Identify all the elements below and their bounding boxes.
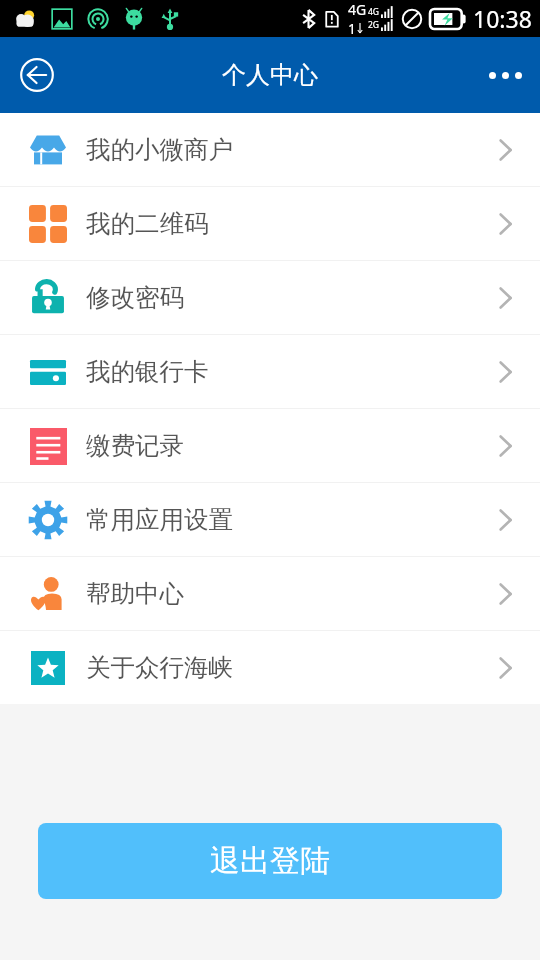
staticText: 修改密码 <box>86 282 184 313</box>
staticText: 4G <box>348 0 367 19</box>
staticText: 10:38 <box>473 3 532 34</box>
button[interactable]: 关于众行海峡 <box>0 631 540 704</box>
button[interactable]: More options <box>481 51 529 99</box>
button[interactable]: 帮助中心 <box>0 557 540 630</box>
staticText: 缴费记录 <box>86 430 184 461</box>
button[interactable]: 我的银行卡 <box>0 335 540 408</box>
button[interactable]: 我的二维码 <box>0 187 540 260</box>
staticText: 2G <box>368 19 380 31</box>
button[interactable]: 常用应用设置 <box>0 483 540 556</box>
staticText: 个人中心 <box>222 60 318 90</box>
button[interactable]: 修改密码 <box>0 261 540 334</box>
staticText: 1 <box>348 19 357 37</box>
button[interactable]: 退出登陆 <box>38 823 502 899</box>
button[interactable]: Back <box>10 48 64 102</box>
staticText: 我的银行卡 <box>86 356 209 387</box>
staticText: 4G <box>368 6 380 18</box>
staticText: 帮助中心 <box>86 578 184 609</box>
button[interactable]: 我的小微商户 <box>0 113 540 186</box>
button[interactable]: 缴费记录 <box>0 409 540 482</box>
staticText: 我的小微商户 <box>86 134 233 165</box>
staticText: 我的二维码 <box>86 208 209 239</box>
staticText: 关于众行海峡 <box>86 652 233 683</box>
staticText: 退出登陆 <box>210 842 330 880</box>
staticText: 常用应用设置 <box>86 504 233 535</box>
